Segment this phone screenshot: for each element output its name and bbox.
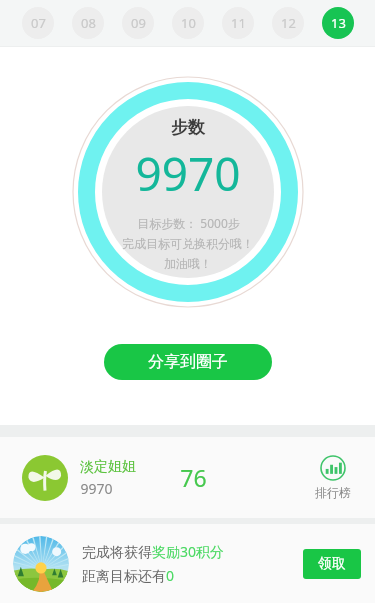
button[interactable]: 11 [222,7,254,39]
button[interactable]: 排行榜 [311,451,355,504]
button[interactable]: 12 [272,7,304,39]
staticText: 目标步数： 5000步 [137,215,240,231]
staticText: 76 [180,462,207,493]
button[interactable]: 领取 [303,549,361,579]
staticText: 9970 [135,142,241,205]
staticText: 领取 [318,555,346,573]
button[interactable]: 13 [322,7,354,39]
button[interactable]: 10 [172,7,204,39]
staticText: 步数 [171,117,205,138]
staticText: 12 [281,14,296,32]
staticText: 11 [231,14,246,32]
button[interactable]: 淡定姐姐 [0,437,375,518]
staticText: 09 [131,14,146,32]
button[interactable]: 08 [72,7,104,39]
staticText: 完成将获得奖励30积分 [82,542,225,561]
staticText: 9970 [80,479,113,498]
button[interactable]: 奖励 [13,536,69,592]
staticText: 13 [331,14,346,32]
staticText: 完成目标可兑换积分哦！ [122,236,254,251]
button[interactable]: 分享到圈子 [104,344,272,380]
staticText: 分享到圈子 [148,352,228,372]
staticText: 淡定姐姐 [80,458,136,476]
staticText: 距离目标还有0 [82,566,175,585]
button[interactable]: 07 [22,7,54,39]
staticText: 10 [181,14,196,32]
button[interactable]: 09 [122,7,154,39]
staticText: 07 [31,14,46,32]
staticText: 加油哦！ [164,256,212,271]
staticText: 排行榜 [315,485,351,500]
staticText: 08 [81,14,96,32]
